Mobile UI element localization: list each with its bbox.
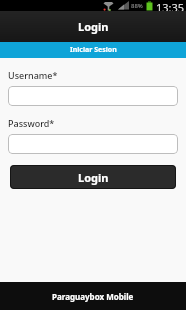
staticText: Password* [8,117,55,129]
button[interactable]: Paraguaybox Mobile [0,282,186,310]
button[interactable] [8,134,178,154]
staticText: Iniciar Sesion [70,45,117,55]
button[interactable]: Iniciar Sesion [0,42,186,58]
staticText: Paraguaybox Mobile [52,291,134,302]
staticText: Username* [8,69,58,81]
staticText: Login [78,170,109,185]
button[interactable] [8,86,178,106]
button[interactable]: Login [10,165,176,189]
staticText: 13:35 [156,0,185,11]
staticText: 88% [131,2,143,10]
staticText: Login [78,19,109,34]
